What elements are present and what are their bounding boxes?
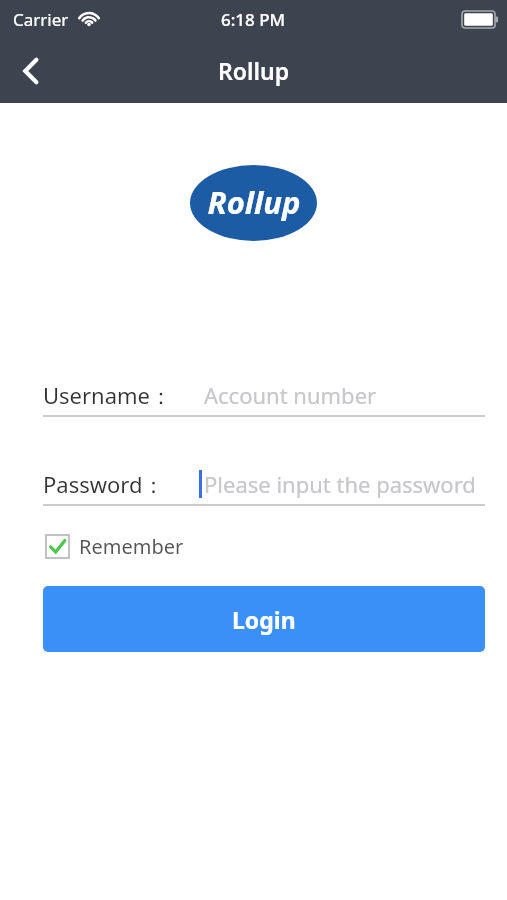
staticText: Rollup bbox=[218, 55, 290, 86]
button[interactable]: Remember bbox=[46, 533, 184, 560]
staticText: Username： bbox=[43, 380, 173, 410]
staticText: Please input the password bbox=[204, 469, 476, 499]
staticText: Login bbox=[232, 604, 296, 635]
staticText: Remember bbox=[79, 533, 184, 560]
staticText: Password： bbox=[43, 469, 165, 499]
staticText: Rollup bbox=[207, 181, 301, 223]
staticText: Account number bbox=[204, 380, 377, 410]
button[interactable]: Login bbox=[43, 586, 485, 652]
staticText: 6:18 PM bbox=[221, 8, 286, 31]
button[interactable]: Username： bbox=[43, 375, 485, 417]
button[interactable]: Back bbox=[0, 38, 62, 103]
staticText: Carrier bbox=[13, 8, 69, 31]
button[interactable]: Password： bbox=[43, 464, 485, 506]
